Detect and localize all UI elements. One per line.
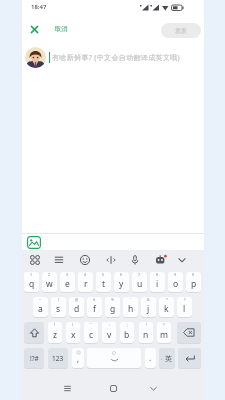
button[interactable] — [29, 254, 41, 266]
button[interactable]: ' — [123, 297, 138, 317]
staticText: y — [119, 278, 124, 290]
button[interactable]: ? — [177, 297, 192, 317]
staticText: n — [143, 329, 149, 341]
button[interactable]: 9 — [168, 272, 183, 292]
staticText: # — [93, 297, 96, 302]
staticText: t — [102, 278, 106, 290]
button[interactable]: ! — [139, 322, 153, 343]
staticText: a — [38, 303, 43, 315]
staticText: 英 — [165, 354, 172, 363]
button[interactable]: ; — [120, 322, 134, 343]
button[interactable]: 8 — [150, 272, 165, 292]
staticText: o — [173, 278, 179, 290]
button[interactable]: 取消 — [26, 22, 70, 36]
staticText: !?# — [30, 354, 39, 363]
staticText: 9 — [174, 272, 177, 277]
staticText: ? — [163, 322, 165, 327]
button[interactable]: !?# — [24, 348, 44, 368]
button[interactable] — [53, 254, 65, 266]
button[interactable]: ( — [48, 322, 62, 343]
button[interactable] — [129, 254, 141, 266]
button[interactable]: , — [72, 348, 84, 368]
button[interactable]: 发表 — [161, 23, 201, 38]
staticText: ! — [146, 322, 147, 327]
button[interactable] — [105, 254, 117, 266]
button[interactable] — [176, 254, 188, 266]
button[interactable]: % — [105, 297, 120, 317]
staticText: ) — [72, 322, 74, 327]
button[interactable]: 英 — [159, 348, 175, 368]
staticText: ( — [54, 322, 56, 327]
staticText: * — [166, 297, 168, 302]
button[interactable] — [146, 381, 161, 396]
staticText: u — [137, 278, 143, 290]
button[interactable] — [106, 381, 121, 396]
staticText: @ — [75, 297, 79, 302]
button[interactable]: 4 — [78, 272, 93, 292]
staticText: 取消 — [55, 25, 68, 33]
staticText: x — [71, 329, 76, 341]
button[interactable] — [24, 322, 44, 343]
button[interactable]: ) — [66, 322, 80, 343]
staticText: v — [107, 329, 112, 341]
staticText: w — [46, 278, 53, 290]
button[interactable]: " — [84, 322, 98, 343]
button[interactable]: # — [87, 297, 102, 317]
button[interactable]: 1 — [24, 272, 39, 292]
button[interactable]: . — [145, 348, 156, 368]
staticText: q — [29, 278, 35, 290]
button[interactable]: * — [159, 297, 174, 317]
button[interactable] — [79, 254, 91, 266]
button[interactable]: 123 — [48, 348, 68, 368]
button[interactable]: 6 — [114, 272, 129, 292]
button[interactable]: ! — [51, 297, 66, 317]
staticText: i — [156, 278, 159, 290]
staticText: 5 — [102, 272, 105, 277]
staticText: b — [124, 329, 130, 341]
button[interactable]: 7 — [132, 272, 147, 292]
button[interactable]: @ — [69, 297, 84, 317]
staticText: m — [160, 329, 168, 341]
button[interactable] — [60, 381, 75, 396]
button[interactable]: 5 — [96, 272, 111, 292]
staticText: c — [89, 329, 94, 341]
staticText: . — [149, 352, 152, 363]
staticText: h — [128, 303, 134, 315]
staticText: f — [93, 303, 96, 315]
staticText: 4 — [84, 272, 87, 277]
button[interactable]: 3 — [60, 272, 75, 292]
button[interactable] — [154, 254, 168, 266]
staticText: , — [77, 353, 80, 364]
button[interactable] — [24, 234, 43, 250]
staticText: " — [90, 322, 92, 327]
staticText: & — [147, 297, 150, 302]
staticText: 3 — [66, 272, 69, 277]
button[interactable] — [87, 348, 141, 368]
staticText: ' — [130, 297, 131, 302]
staticText: p — [191, 278, 197, 290]
button[interactable]: ? — [157, 322, 171, 343]
button[interactable]: : — [102, 322, 116, 343]
staticText: ~ — [39, 297, 42, 302]
staticText: 发表 — [175, 27, 187, 35]
button[interactable]: & — [141, 297, 156, 317]
staticText: 2 — [48, 272, 51, 277]
button[interactable] — [177, 322, 201, 343]
staticText: r — [84, 278, 88, 290]
button[interactable]: 2 — [42, 272, 57, 292]
button[interactable] — [178, 348, 201, 368]
staticText: 6 — [120, 272, 123, 277]
staticText: l — [183, 303, 186, 315]
staticText: s — [56, 303, 61, 315]
staticText: 1 — [30, 272, 33, 277]
staticText: 123 — [52, 354, 64, 363]
staticText: e — [65, 278, 70, 290]
staticText: z — [53, 329, 57, 341]
staticText: 有啥新鲜事? (中文会自动翻译成英文哦) — [52, 53, 181, 63]
button[interactable]: ~ — [33, 297, 48, 317]
button[interactable]: 0 — [186, 272, 201, 292]
staticText: k — [164, 303, 169, 315]
staticText: : — [109, 322, 110, 327]
staticText: g — [110, 303, 116, 315]
staticText: ; — [127, 322, 128, 327]
